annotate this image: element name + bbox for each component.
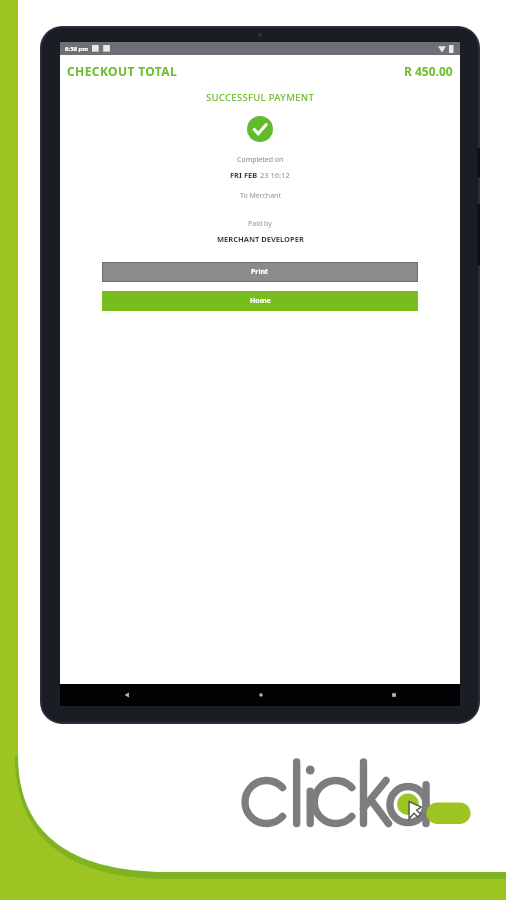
- staticText: 23 16:12: [260, 170, 290, 180]
- button[interactable]: Back: [60, 684, 194, 706]
- staticText: SUCCESSFUL PAYMENT: [206, 91, 315, 104]
- staticText: R 450.00: [404, 63, 453, 79]
- staticText: Paid by: [248, 219, 272, 229]
- staticText: FRI FEB: [230, 170, 260, 180]
- button[interactable]: Recent apps: [327, 684, 460, 706]
- staticText: To Merchant: [240, 191, 281, 201]
- staticText: CHECKOUT TOTAL: [67, 63, 178, 79]
- staticText: Home: [250, 296, 271, 306]
- staticText: 6:38 pm: [65, 45, 89, 53]
- staticText: Completed on: [237, 155, 284, 165]
- button[interactable]: Home: [194, 684, 327, 706]
- staticText: Print: [251, 267, 269, 277]
- button[interactable]: Home: [102, 291, 418, 311]
- button[interactable]: Print: [102, 262, 418, 282]
- staticText: MERCHANT DEVELOPER: [217, 234, 304, 244]
